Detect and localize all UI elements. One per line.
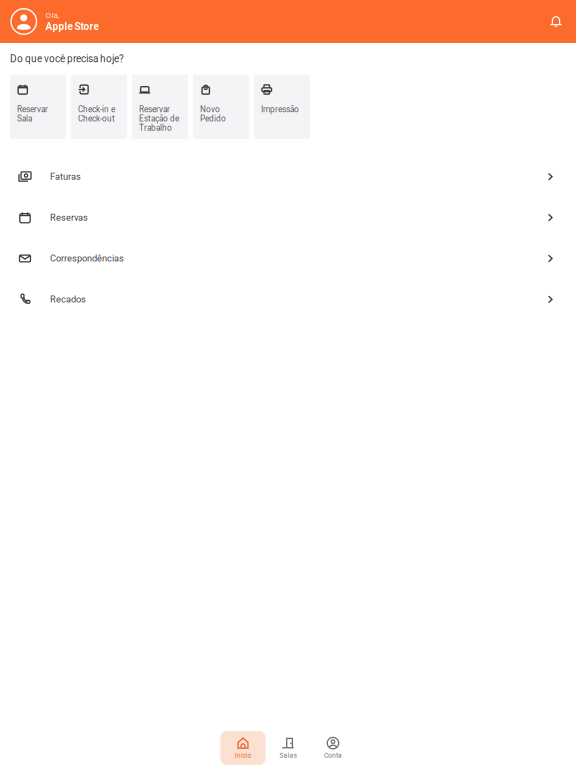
staticText: Sala xyxy=(17,114,32,124)
button[interactable]: Salas xyxy=(265,731,310,765)
button[interactable]: Faturas xyxy=(0,156,576,197)
staticText: Impressão xyxy=(261,105,299,114)
staticText: Correspondências xyxy=(50,253,124,264)
staticText: Reservas xyxy=(50,212,88,223)
button[interactable]: Recados xyxy=(0,279,576,320)
button[interactable]: Notificações xyxy=(542,7,570,35)
button[interactable]: Check-in e xyxy=(71,75,127,139)
staticText: Conta xyxy=(324,752,342,759)
staticText: Estação de xyxy=(139,114,179,124)
button[interactable]: Correspondências xyxy=(0,238,576,279)
button[interactable]: Reservas xyxy=(0,197,576,238)
staticText: Reservar xyxy=(17,105,48,114)
staticText: Recados xyxy=(50,294,86,305)
staticText: Trabalho xyxy=(139,123,172,133)
button[interactable]: Conta xyxy=(310,731,355,765)
staticText: Apple Store xyxy=(45,21,98,32)
button[interactable]: Impressão xyxy=(254,75,310,139)
staticText: Novo xyxy=(200,105,220,114)
staticText: Faturas xyxy=(50,171,81,182)
staticText: Olá, xyxy=(45,10,59,20)
staticText: Início xyxy=(234,752,251,759)
staticText: Check-out xyxy=(78,114,115,124)
staticText: Pedido xyxy=(200,114,226,124)
staticText: Reservar xyxy=(139,105,170,114)
button[interactable]: Início xyxy=(220,731,265,765)
button[interactable]: Reservar xyxy=(132,75,188,139)
staticText: Do que você precisa hoje? xyxy=(10,53,124,65)
button[interactable]: Novo xyxy=(193,75,249,139)
staticText: Check-in e xyxy=(78,105,115,114)
button[interactable]: Reservar xyxy=(10,75,66,139)
staticText: Salas xyxy=(279,752,296,759)
